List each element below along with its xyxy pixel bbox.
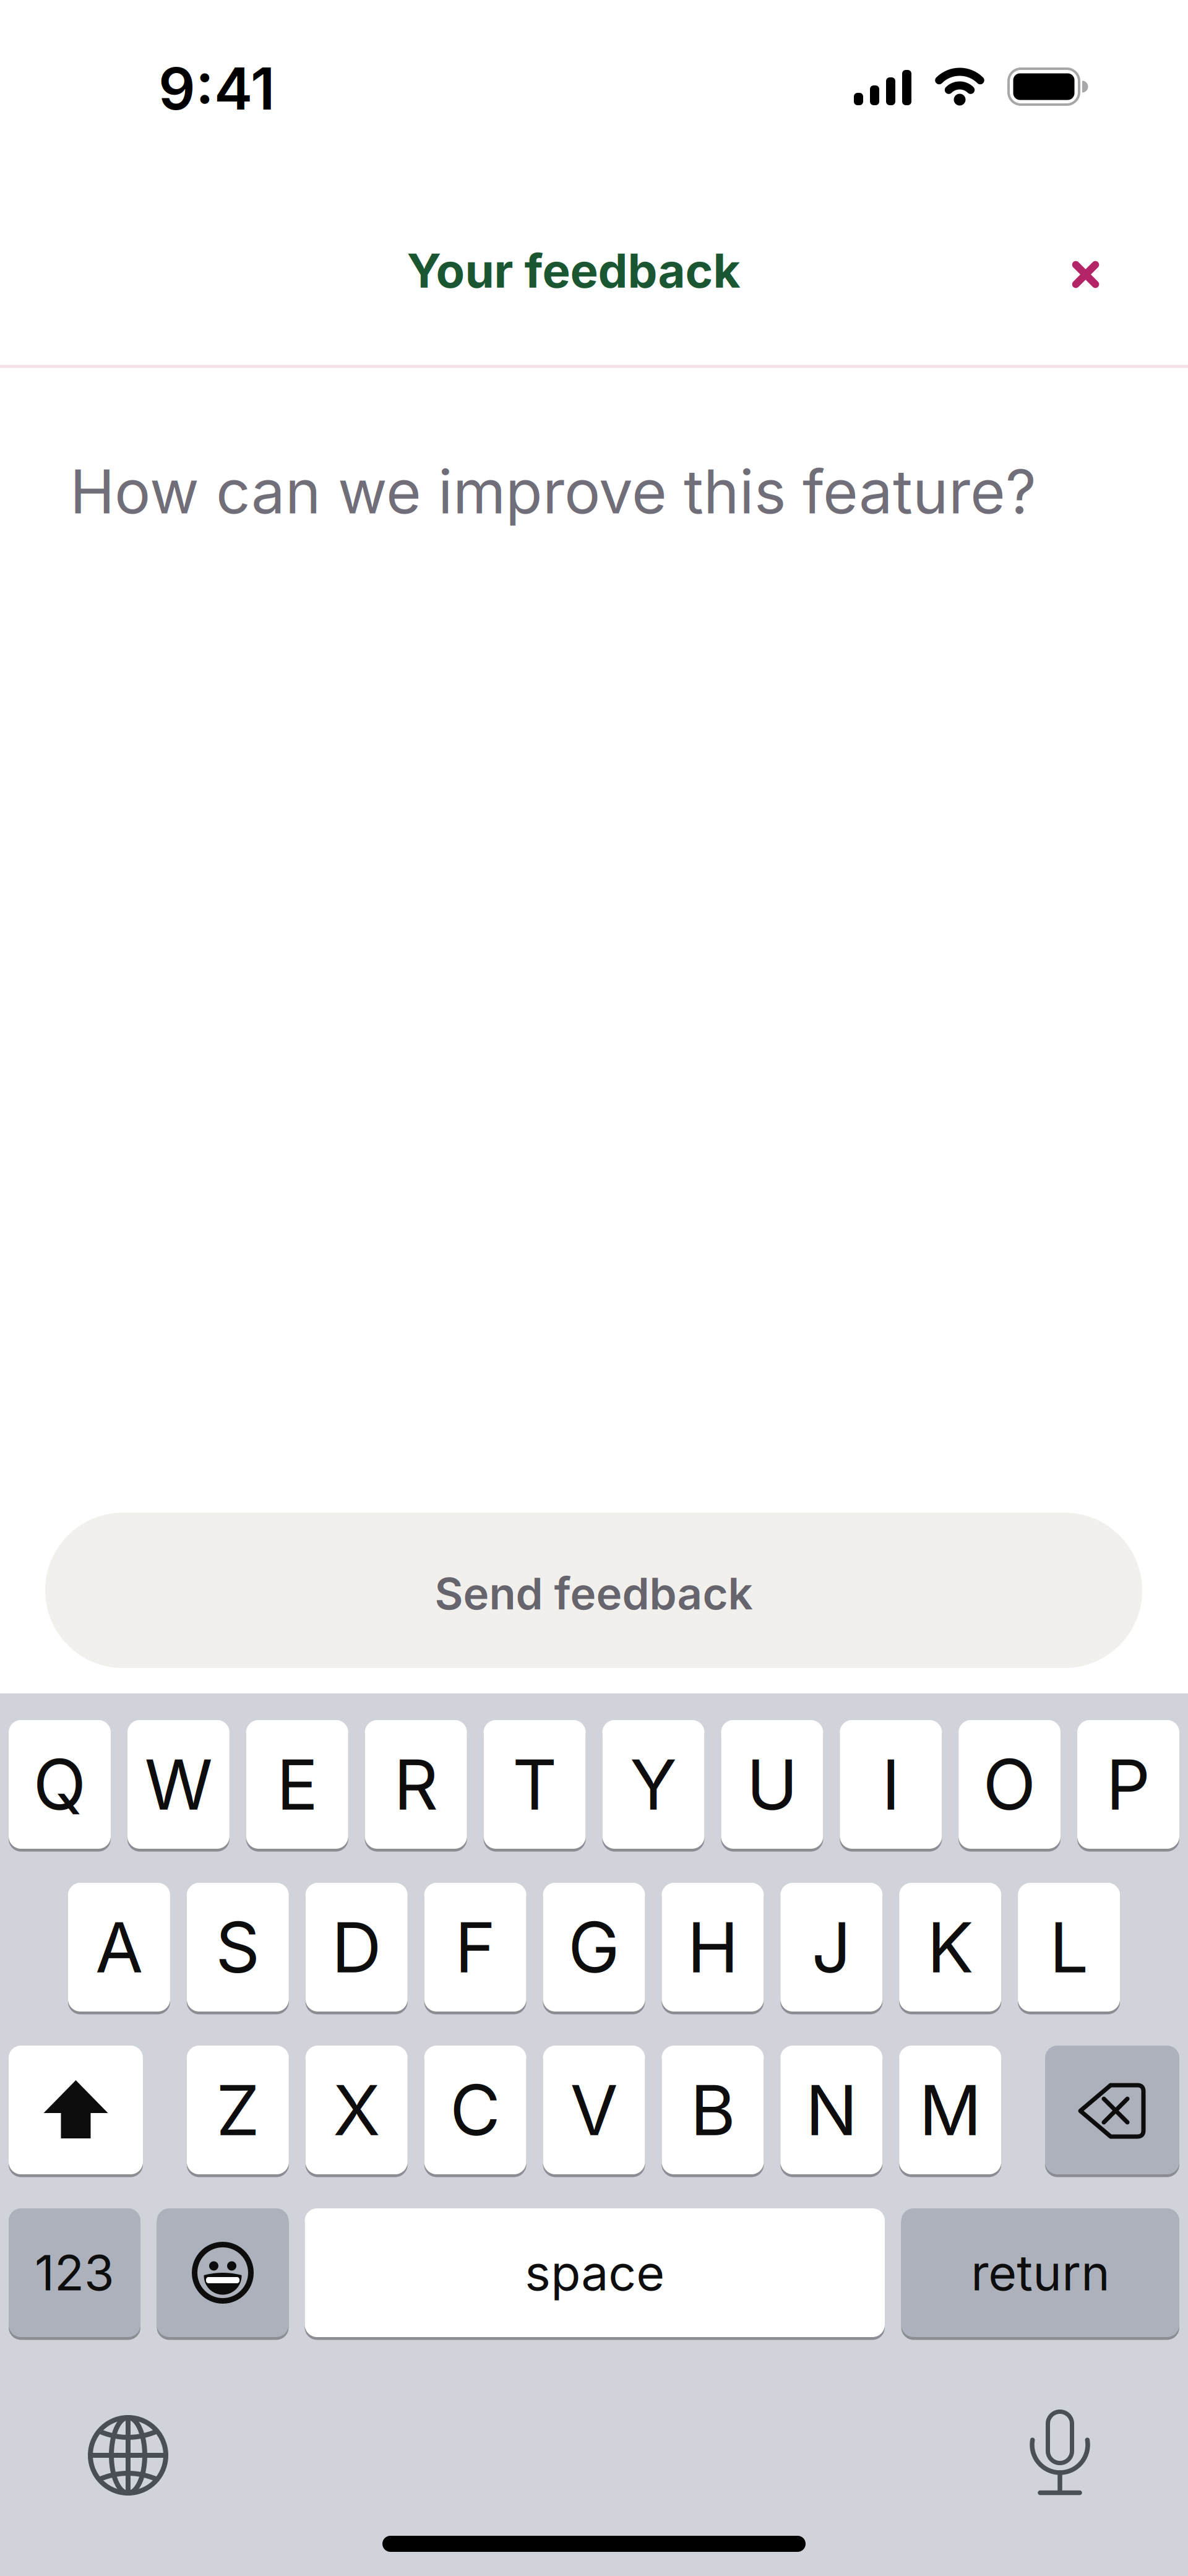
button[interactable]: M [899, 2046, 1001, 2174]
staticText: R [394, 1743, 438, 1825]
button[interactable]: I [840, 1720, 942, 1849]
staticText: Z [216, 2069, 259, 2151]
staticText: A [95, 1906, 143, 1988]
button[interactable]: N [780, 2046, 883, 2174]
button[interactable] [79, 2406, 178, 2505]
staticText: space [525, 2244, 665, 2301]
button[interactable]: space [305, 2208, 885, 2337]
staticText: J [812, 1906, 851, 1988]
staticText: N [805, 2069, 857, 2151]
button[interactable] [9, 2046, 143, 2174]
staticText: H [687, 1906, 738, 1988]
button[interactable]: H [662, 1883, 764, 2012]
button[interactable]: Z [187, 2046, 289, 2174]
button[interactable]: Send feedback [45, 1513, 1142, 1668]
staticText: Your feedback [407, 243, 740, 298]
staticText: 123 [35, 2244, 114, 2301]
button[interactable]: P [1077, 1720, 1179, 1849]
staticText: return [971, 2244, 1110, 2301]
staticText: T [512, 1743, 557, 1825]
button[interactable] [1045, 2046, 1179, 2174]
staticText: G [568, 1906, 620, 1988]
button[interactable]: G [543, 1883, 645, 2012]
staticText: Q [33, 1743, 86, 1825]
staticText: M [919, 2069, 981, 2151]
button[interactable]: return [901, 2208, 1179, 2337]
staticText: 9:41 [158, 54, 275, 123]
button[interactable]: X [305, 2046, 408, 2174]
button[interactable]: V [543, 2046, 645, 2174]
button[interactable]: K [899, 1883, 1001, 2012]
button[interactable]: L [1018, 1883, 1120, 2012]
button[interactable]: J [780, 1883, 883, 2012]
staticText: Send feedback [435, 1568, 753, 1619]
staticText: Y [630, 1743, 677, 1825]
staticText: E [276, 1743, 318, 1825]
button[interactable] [157, 2208, 289, 2337]
button[interactable]: S [187, 1883, 289, 2012]
button[interactable]: D [305, 1883, 408, 2012]
button[interactable]: Q [9, 1720, 111, 1849]
staticText: W [144, 1743, 212, 1825]
staticText: S [216, 1906, 260, 1988]
staticText: D [331, 1906, 382, 1988]
staticText: O [983, 1743, 1036, 1825]
staticText: F [455, 1906, 496, 1988]
staticText: U [746, 1743, 798, 1825]
staticText: K [927, 1906, 973, 1988]
button[interactable]: R [365, 1720, 467, 1849]
button[interactable]: C [424, 2046, 526, 2174]
staticText: B [690, 2069, 735, 2151]
button[interactable] [1052, 240, 1120, 309]
staticText: How can we improve this feature? [70, 456, 1036, 527]
button[interactable]: U [721, 1720, 823, 1849]
staticText: P [1106, 1743, 1151, 1825]
staticText: C [450, 2069, 501, 2151]
staticText: V [570, 2069, 618, 2151]
button[interactable]: T [484, 1720, 586, 1849]
staticText: I [882, 1743, 900, 1825]
button[interactable]: A [68, 1883, 170, 2012]
button[interactable]: W [127, 1720, 229, 1849]
button[interactable]: O [959, 1720, 1061, 1849]
button[interactable]: B [662, 2046, 764, 2174]
button[interactable]: Y [602, 1720, 704, 1849]
button[interactable]: E [246, 1720, 348, 1849]
button[interactable] [1010, 2401, 1109, 2507]
staticText: L [1049, 1906, 1088, 1988]
button[interactable]: F [424, 1883, 526, 2012]
button[interactable]: 123 [9, 2208, 140, 2337]
staticText: X [333, 2069, 380, 2151]
